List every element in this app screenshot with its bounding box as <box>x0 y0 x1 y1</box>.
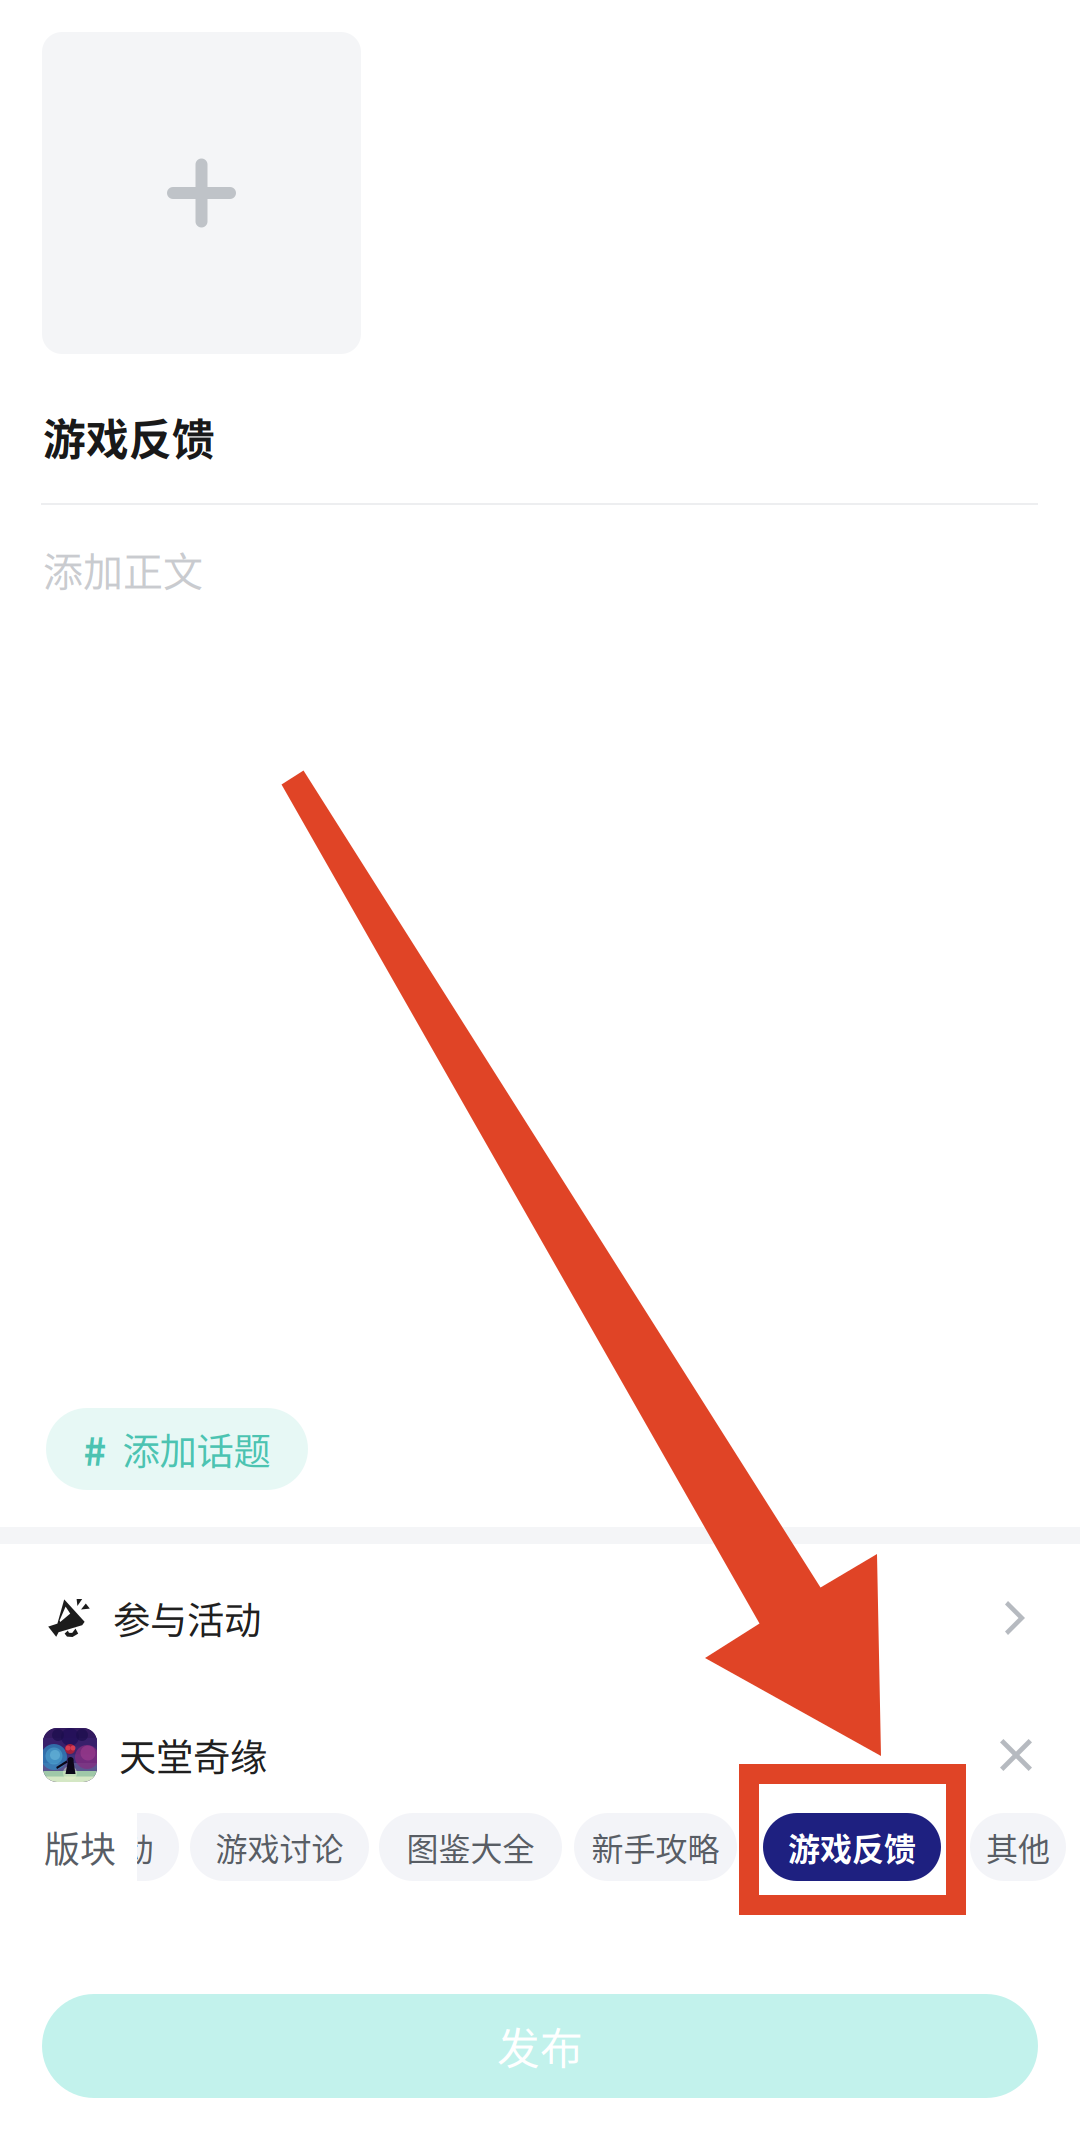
button[interactable]: 图鉴大全 <box>379 1813 562 1881</box>
staticText: 图鉴大全 <box>406 1824 534 1870</box>
staticText: 游戏讨论 <box>215 1824 343 1870</box>
staticText: 游戏反馈 <box>43 406 215 468</box>
staticText: 版块 <box>44 1821 116 1873</box>
staticText: 参与活动 <box>113 1591 261 1645</box>
staticText: 其他 <box>986 1824 1050 1870</box>
button[interactable]: 发布 <box>42 1994 1038 2098</box>
staticText: 天堂奇缘 <box>119 1728 267 1782</box>
button[interactable]: 游戏讨论 <box>190 1813 369 1881</box>
button[interactable]: 日常活动 <box>0 1813 179 1881</box>
staticText: 添加正文 <box>43 540 203 598</box>
staticText: 新手攻略 <box>591 1824 719 1870</box>
button[interactable]: Add photo <box>42 32 361 354</box>
staticText: 发布 <box>497 2015 583 2077</box>
button[interactable]: # <box>46 1408 308 1490</box>
button[interactable]: 新手攻略 <box>574 1813 737 1881</box>
staticText: 游戏反馈 <box>788 1824 916 1870</box>
staticText: # <box>83 1421 106 1477</box>
staticText: 日常活动 <box>25 1824 153 1870</box>
button[interactable]: 其他 <box>970 1813 1066 1881</box>
staticText: 添加话题 <box>122 1422 270 1476</box>
button[interactable]: Remove attached game <box>1000 1739 1032 1771</box>
button[interactable]: 游戏反馈 <box>763 1813 941 1881</box>
button[interactable]: 参与活动 <box>0 1562 1080 1674</box>
